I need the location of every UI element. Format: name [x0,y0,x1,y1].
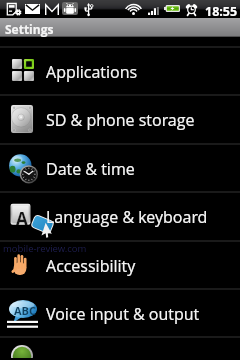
staticText: Date & time [46,158,135,180]
staticText: 18:55 [205,3,238,20]
staticText: ABC [14,303,36,318]
button[interactable]: Applications [0,46,240,94]
button[interactable]: Search settings [0,336,240,358]
other: Search settings [11,345,33,358]
staticText: A [16,207,28,230]
staticText: Applications [46,61,138,83]
staticText: mobile-review.com [3,242,87,255]
button[interactable]: A [0,191,240,239]
button[interactable]: Date & time [0,143,240,191]
button[interactable]: SD & phone storage [0,94,240,142]
staticText: SD & phone storage [46,109,195,131]
button[interactable]: Accessibility [0,240,240,288]
button[interactable]: ABC [0,288,240,336]
staticText: Accessibility [46,255,136,277]
staticText: Settings [5,21,54,37]
staticText: Language & keyboard [46,206,208,228]
staticText: Voice input & output [46,303,200,325]
